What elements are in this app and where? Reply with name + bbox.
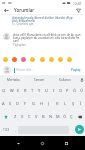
staticText: E — [17, 88, 20, 93]
button[interactable]: W — [8, 84, 15, 97]
button[interactable]: B — [40, 110, 47, 123]
button[interactable]: #istanbulmoda #trend #stilim #kesfet #fy… — [12, 16, 84, 27]
staticText: H — [40, 101, 43, 106]
staticText: X — [21, 114, 24, 119]
button[interactable]: ?123 — [1, 123, 12, 136]
button[interactable]: Emoji — [11, 56, 17, 62]
staticText: L — [64, 101, 67, 106]
button[interactable]: Comma — [12, 123, 18, 136]
button[interactable]: Home — [37, 138, 48, 149]
button[interactable]: İ — [77, 97, 85, 110]
staticText: K — [56, 101, 59, 106]
button[interactable]: Shift — [0, 110, 11, 123]
button[interactable]: Paylaş — [70, 67, 82, 73]
button[interactable]: T — [29, 84, 36, 97]
staticText: Paylaş — [71, 68, 81, 72]
button[interactable]: U — [43, 84, 50, 97]
button[interactable]: S — [7, 97, 14, 110]
button[interactable]: F — [21, 97, 29, 110]
staticText: 12:41 — [73, 1, 82, 5]
staticText: B — [42, 114, 45, 119]
staticText: İ — [80, 101, 82, 106]
button[interactable]: R — [22, 84, 29, 97]
button[interactable]: Ç — [68, 110, 75, 123]
button[interactable]: C — [26, 110, 33, 123]
button[interactable]: Emoji — [2, 56, 8, 62]
button[interactable]: K — [53, 97, 61, 110]
button[interactable]: Emoji — [66, 56, 72, 62]
button[interactable]: J — [45, 97, 53, 110]
staticText: F — [24, 101, 27, 106]
staticText: Merhaba — [7, 78, 20, 82]
button[interactable]: Emoji — [48, 56, 54, 62]
staticText: M — [56, 114, 60, 119]
button[interactable]: Backspace — [75, 110, 85, 123]
staticText: A — [2, 101, 5, 106]
button[interactable]: V — [33, 110, 40, 123]
staticText: Yorumlar — [14, 7, 35, 13]
button[interactable]: Recents — [61, 138, 72, 149]
button[interactable]: Filter — [74, 6, 82, 14]
staticText: C — [28, 114, 31, 119]
staticText: U — [45, 88, 48, 93]
button[interactable]: Emoji — [57, 56, 63, 62]
staticText: R — [24, 88, 27, 93]
button[interactable]: Ü — [78, 84, 85, 97]
staticText: Ş — [72, 101, 75, 106]
button[interactable]: O — [57, 84, 64, 97]
button[interactable]: Back — [2, 6, 10, 14]
button[interactable]: Z — [11, 110, 19, 123]
button[interactable]: E — [15, 84, 22, 97]
button[interactable]: A — [0, 97, 7, 110]
staticText: Y — [38, 88, 41, 93]
button[interactable]: G — [29, 97, 37, 110]
staticText: Z — [14, 114, 17, 119]
staticText: O — [59, 88, 63, 93]
staticText: Tamam — [34, 78, 45, 82]
staticText: W — [10, 88, 14, 93]
staticText: , — [15, 127, 16, 132]
button[interactable]: Emoji — [29, 56, 35, 62]
staticText: T — [31, 88, 34, 93]
button[interactable]: H — [37, 97, 45, 110]
staticText: N — [49, 114, 53, 119]
button[interactable]: Ş — [69, 97, 77, 110]
staticText: #istanbulmoda #trend #stilim #kesfet #fy… — [12, 16, 73, 23]
staticText: 1s Çevirisini gör — [12, 22, 34, 26]
button[interactable]: N — [47, 110, 54, 123]
button[interactable]: Ö — [61, 110, 68, 123]
button[interactable]: Y — [36, 84, 43, 97]
staticText: D — [16, 101, 19, 106]
staticText: P — [66, 88, 69, 93]
button[interactable]: Q — [0, 84, 8, 97]
staticText: Ü — [80, 88, 83, 93]
button[interactable]: P — [64, 84, 71, 97]
button[interactable]: M — [54, 110, 61, 123]
staticText: Ğ — [73, 88, 76, 93]
button[interactable]: Back — [13, 138, 24, 149]
button[interactable]: I — [50, 84, 57, 97]
button[interactable]: Send — [75, 125, 84, 134]
button[interactable]: Emoji — [39, 56, 45, 62]
button[interactable]: Kullanıcı — [52, 75, 78, 84]
button[interactable]: L — [61, 97, 69, 110]
staticText: alisa.cd01 Bunusbest en ellrktkk ve sen … — [13, 33, 83, 43]
button[interactable]: X — [19, 110, 26, 123]
button[interactable]: Merhaba — [0, 75, 26, 84]
staticText: . — [72, 127, 73, 132]
staticText: Ç — [70, 114, 73, 119]
button[interactable]: alisa.cd01 Bunusbest en ellrktkk ve sen … — [3, 33, 83, 47]
button[interactable]: Voice input — [78, 75, 85, 84]
button[interactable]: Paylaşılan — [13, 43, 26, 47]
staticText: Ö — [63, 114, 67, 119]
staticText: Kullanıcı — [59, 78, 71, 82]
button[interactable]: Tamam — [26, 75, 52, 84]
button[interactable]: Ğ — [71, 84, 78, 97]
button[interactable]: D — [14, 97, 21, 110]
staticText: ?123 — [3, 128, 10, 132]
button[interactable]: Emoji — [20, 56, 26, 62]
staticText: J — [48, 101, 50, 106]
staticText: G — [32, 101, 35, 106]
